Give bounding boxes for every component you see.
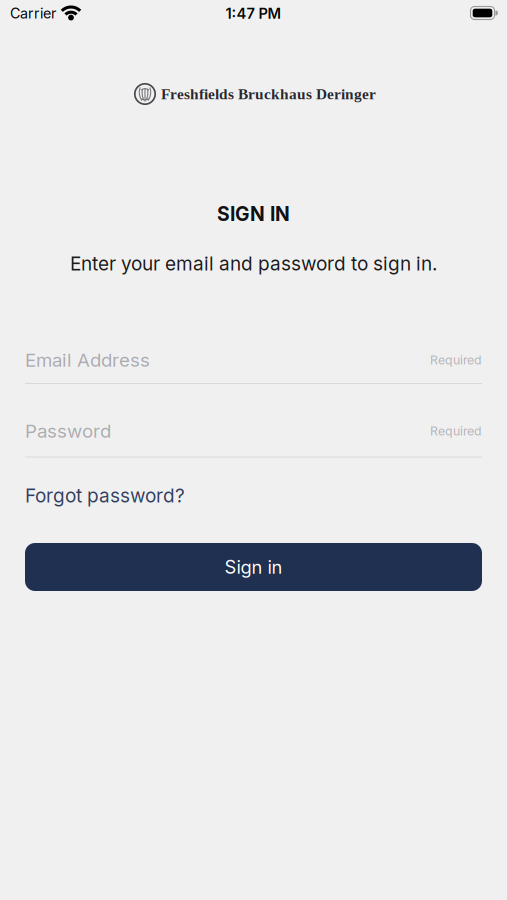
staticText: Required <box>430 423 482 438</box>
button[interactable]: Sign in <box>25 543 482 591</box>
staticText: Forgot password? <box>25 484 185 507</box>
staticText: Enter your email and password to sign in… <box>70 252 437 275</box>
staticText: Freshfields Bruckhaus Deringer <box>161 85 376 102</box>
button[interactable]: Password <box>25 418 482 457</box>
button[interactable]: Forgot password? <box>25 484 185 507</box>
staticText: Carrier <box>10 4 56 22</box>
button[interactable]: Email Address <box>25 347 482 384</box>
staticText: Sign in <box>224 556 282 578</box>
staticText: 1:47 PM <box>225 5 281 22</box>
staticText: SIGN IN <box>217 202 290 226</box>
staticText: Required <box>430 352 482 367</box>
staticText: Password <box>25 420 111 442</box>
staticText: Email Address <box>25 349 150 371</box>
